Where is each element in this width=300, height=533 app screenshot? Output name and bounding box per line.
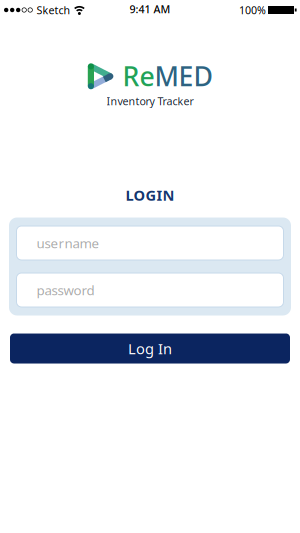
button[interactable]: username xyxy=(16,226,283,260)
staticText: Inventory Tracker xyxy=(106,94,193,108)
staticText: Re xyxy=(122,58,154,94)
button[interactable]: Log In xyxy=(10,333,290,363)
staticText: Sketch xyxy=(36,3,70,17)
staticText: Log In xyxy=(128,339,172,358)
staticText: MED xyxy=(154,58,212,94)
button[interactable]: password xyxy=(16,273,283,307)
staticText: username xyxy=(36,234,99,252)
staticText: 9:41 AM xyxy=(129,2,170,16)
staticText: password xyxy=(36,281,94,299)
staticText: LOGIN xyxy=(125,185,174,205)
staticText: 100% xyxy=(239,3,266,17)
